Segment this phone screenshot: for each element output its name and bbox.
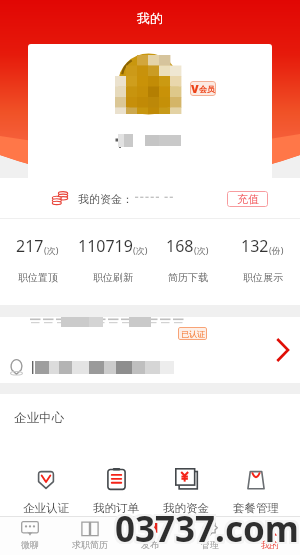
staticText: 03737.com — [114, 505, 298, 553]
staticText: 套餐管理 — [233, 501, 279, 515]
button[interactable]: V — [190, 81, 216, 96]
staticText: 我的 — [261, 539, 279, 550]
staticText: 我的资金： — [78, 192, 133, 206]
staticText: 168 — [166, 235, 194, 257]
staticText: (次) — [44, 244, 59, 256]
staticText: 03737.com — [115, 503, 299, 551]
staticText: 03737.com — [113, 505, 297, 553]
staticText: 03737.com — [114, 503, 298, 551]
staticText: 03737.com — [115, 504, 299, 552]
staticText: (次) — [133, 244, 148, 256]
button[interactable]: 110719 — [75, 219, 150, 284]
button[interactable]: 我的订单 — [81, 442, 151, 515]
button[interactable]: 168 — [150, 219, 225, 284]
button[interactable]: 微聊 — [0, 517, 60, 550]
button[interactable]: 充值 — [227, 191, 268, 207]
staticText: 职位置顶 — [18, 271, 58, 284]
button[interactable]: 管理 — [180, 517, 240, 550]
staticText: 我的资金 — [163, 501, 209, 515]
staticText: 03737.com — [113, 507, 297, 555]
staticText: 企业中心 — [14, 410, 64, 426]
staticText: 充值 — [237, 192, 259, 206]
button[interactable]: 套餐管理 — [221, 442, 291, 515]
staticText: 职位刷新 — [93, 271, 133, 284]
staticText: 03737.com — [116, 505, 300, 553]
staticText: 03737.com — [117, 504, 300, 552]
staticText: (份) — [269, 244, 284, 256]
button[interactable]: 企业认证 — [10, 442, 81, 515]
staticText: 求职简历 — [72, 539, 108, 550]
staticText: 03737.com — [114, 504, 298, 552]
staticText: 132 — [241, 235, 269, 257]
staticText: 03737.com — [116, 504, 300, 552]
staticText: 微聊 — [21, 539, 39, 550]
other: Publish — [142, 521, 159, 536]
staticText: (次) — [194, 244, 209, 256]
staticText: 03737.com — [115, 506, 299, 554]
other: My funds — [52, 191, 68, 207]
staticText: 03737.com — [117, 507, 300, 555]
staticText: V — [191, 81, 199, 96]
staticText: 217 — [16, 235, 44, 257]
staticText: 03737.com — [113, 504, 297, 552]
staticText: 03737.com — [114, 507, 298, 555]
staticText: 03737.com — [116, 507, 300, 555]
staticText: 03737.com — [116, 503, 300, 551]
staticText: 会员 — [199, 84, 215, 94]
staticText: 管理 — [201, 539, 219, 550]
button[interactable]: 132 — [225, 219, 300, 284]
button[interactable]: 217 — [0, 219, 75, 284]
staticText: 我的订单 — [93, 501, 139, 515]
staticText: 我的 — [137, 10, 163, 26]
staticText: 03737.com — [115, 507, 299, 555]
staticText: 简历下载 — [168, 271, 208, 284]
staticText: 03737.com — [113, 503, 297, 551]
staticText: 03737.com — [114, 506, 298, 554]
button[interactable]: 我的资金 — [151, 442, 221, 515]
staticText: 03737.com — [117, 506, 300, 554]
staticText: 03737.com — [117, 503, 300, 551]
staticText: 已认证 — [181, 329, 205, 339]
staticText: 03737.com — [115, 505, 299, 553]
staticText: 03737.com — [116, 506, 300, 554]
button[interactable]: 已认证 — [0, 317, 300, 383]
staticText: 职位展示 — [243, 271, 283, 284]
staticText: 发布 — [141, 539, 159, 550]
staticText: 03737.com — [113, 506, 297, 554]
staticText: 企业认证 — [23, 501, 69, 515]
other: Company detail — [277, 338, 289, 362]
button[interactable]: 我的 — [240, 517, 300, 550]
button[interactable]: 求职简历 — [60, 517, 120, 550]
staticText: 03737.com — [117, 505, 300, 553]
button[interactable]: Publish — [120, 517, 180, 550]
staticText: 110719 — [78, 235, 133, 257]
